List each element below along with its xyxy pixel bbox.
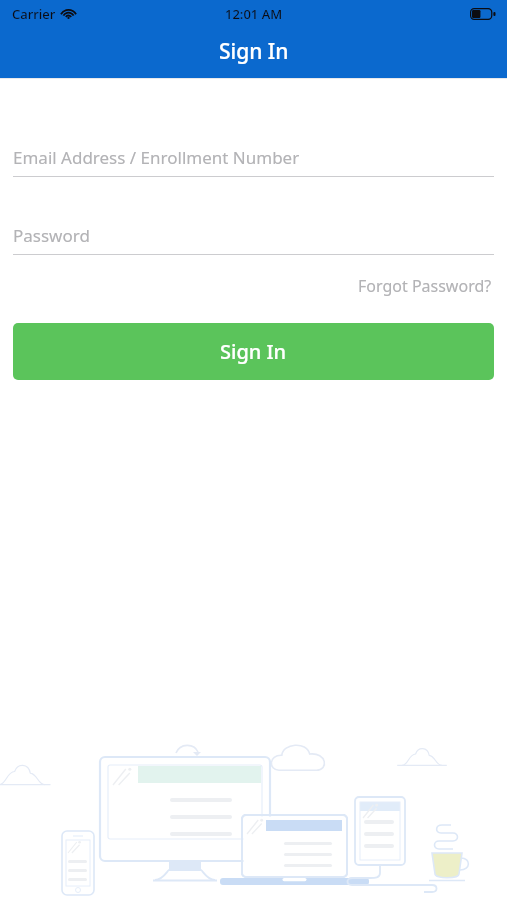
button[interactable]: Sign In — [13, 323, 494, 380]
staticText: Carrier — [12, 5, 56, 23]
button[interactable]: Password — [13, 216, 494, 254]
button[interactable]: Email Address / Enrollment Number — [13, 138, 494, 176]
staticText: Email Address / Enrollment Number — [13, 146, 300, 169]
staticText: 12:01 AM — [225, 5, 283, 23]
staticText: Sign In — [219, 37, 289, 66]
staticText: Sign In — [220, 338, 287, 365]
staticText: Password — [13, 224, 90, 247]
button[interactable]: Forgot Password? — [356, 271, 494, 301]
staticText: Forgot Password? — [358, 275, 492, 297]
